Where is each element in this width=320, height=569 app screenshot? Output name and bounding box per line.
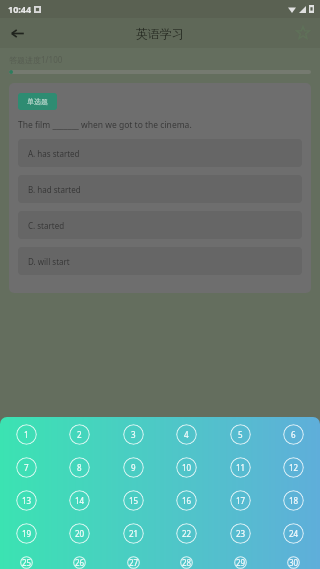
button[interactable]: 单选题 xyxy=(18,93,57,110)
button[interactable]: 5 xyxy=(230,424,251,445)
button[interactable]: 6 xyxy=(283,424,304,445)
button[interactable]: 14 xyxy=(69,490,90,511)
staticText: 12 xyxy=(289,462,299,473)
button[interactable]: A. has started xyxy=(18,139,302,167)
staticText: 10 xyxy=(182,462,192,473)
button[interactable]: 21 xyxy=(123,523,144,544)
button[interactable]: 23 xyxy=(230,523,251,544)
button[interactable]: 9 xyxy=(123,457,144,478)
button[interactable]: 4 xyxy=(176,424,197,445)
staticText: 11 xyxy=(236,462,246,473)
button[interactable]: 16 xyxy=(176,490,197,511)
staticText: C. started xyxy=(28,220,65,231)
staticText: 10:44 xyxy=(8,3,32,15)
staticText: 6 xyxy=(291,429,296,440)
button[interactable]: 13 xyxy=(16,490,37,511)
staticText: 17 xyxy=(236,495,246,506)
staticText: 答题进度1/100 xyxy=(9,54,63,65)
staticText: 19 xyxy=(22,528,32,539)
button[interactable]: 25 xyxy=(16,556,37,569)
staticText: 21 xyxy=(129,528,139,539)
button[interactable]: D. will start xyxy=(18,247,302,275)
button[interactable]: 19 xyxy=(16,523,37,544)
button[interactable]: Back xyxy=(0,18,34,48)
button[interactable]: 3 xyxy=(123,424,144,445)
staticText: 5 xyxy=(238,429,243,440)
staticText: 16 xyxy=(182,495,192,506)
button[interactable]: 29 xyxy=(230,556,251,569)
staticText: 7 xyxy=(24,462,29,473)
staticText: 英语学习 xyxy=(136,26,184,41)
staticText: 8 xyxy=(77,462,82,473)
staticText: 9 xyxy=(131,462,136,473)
staticText: 30 xyxy=(289,557,299,568)
staticText: D. will start xyxy=(28,256,70,267)
staticText: 13 xyxy=(22,495,32,506)
staticText: 18 xyxy=(289,495,299,506)
button[interactable]: B. had started xyxy=(18,175,302,203)
button[interactable]: C. started xyxy=(18,211,302,239)
button[interactable]: 1 xyxy=(16,424,37,445)
staticText: 24 xyxy=(289,528,299,539)
staticText: 25 xyxy=(22,557,32,568)
staticText: 15 xyxy=(129,495,139,506)
staticText: 26 xyxy=(75,557,85,568)
button[interactable]: 24 xyxy=(283,523,304,544)
button[interactable]: 10 xyxy=(176,457,197,478)
staticText: 单选题 xyxy=(27,97,48,106)
staticText: The film _______ when we got to the cine… xyxy=(18,119,192,131)
staticText: 23 xyxy=(236,528,246,539)
button[interactable]: 20 xyxy=(69,523,90,544)
staticText: 14 xyxy=(75,495,85,506)
button[interactable]: 30 xyxy=(283,556,304,569)
staticText: 28 xyxy=(182,557,192,568)
staticText: 3 xyxy=(131,429,136,440)
staticText: 4 xyxy=(184,429,189,440)
button[interactable]: 12 xyxy=(283,457,304,478)
staticText: 29 xyxy=(236,557,246,568)
button[interactable]: 27 xyxy=(123,556,144,569)
staticText: 27 xyxy=(129,557,139,568)
button[interactable]: 11 xyxy=(230,457,251,478)
staticText: 20 xyxy=(75,528,85,539)
button[interactable]: 28 xyxy=(176,556,197,569)
button[interactable]: 22 xyxy=(176,523,197,544)
staticText: A. has started xyxy=(28,148,80,159)
button[interactable]: 7 xyxy=(16,457,37,478)
staticText: B. had started xyxy=(28,184,81,195)
button[interactable]: 18 xyxy=(283,490,304,511)
button[interactable]: 8 xyxy=(69,457,90,478)
staticText: 22 xyxy=(182,528,192,539)
staticText: 1 xyxy=(24,429,29,440)
button[interactable]: 15 xyxy=(123,490,144,511)
button[interactable]: 26 xyxy=(69,556,90,569)
button[interactable]: 2 xyxy=(69,424,90,445)
button[interactable]: 17 xyxy=(230,490,251,511)
staticText: 2 xyxy=(77,429,82,440)
